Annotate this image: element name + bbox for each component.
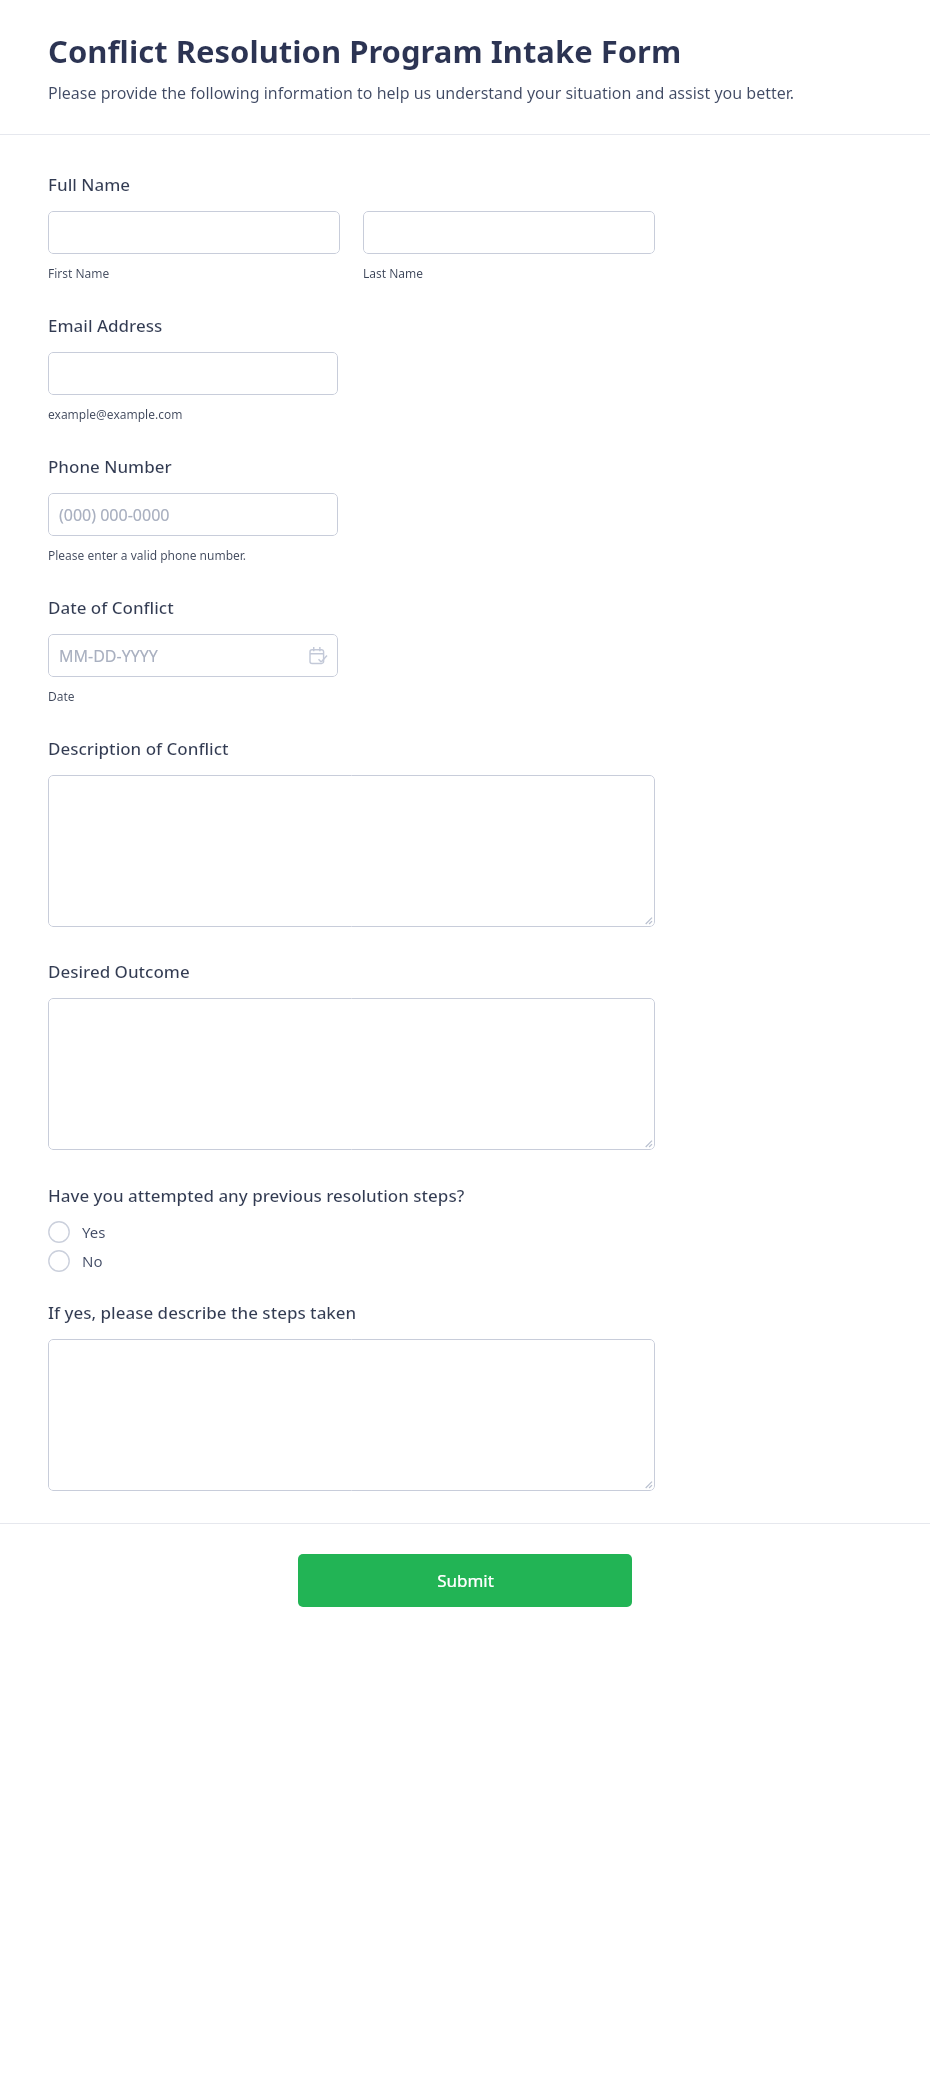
staticText: No [82, 1251, 103, 1271]
staticText: Have you attempted any previous resoluti… [48, 1184, 465, 1207]
button[interactable] [363, 211, 655, 254]
staticText: Desired Outcome [48, 960, 190, 983]
staticText: Email Address [48, 314, 163, 337]
staticText: If yes, please describe the steps taken [48, 1301, 357, 1324]
staticText: Full Name [48, 173, 131, 196]
button[interactable]: No [48, 1246, 655, 1275]
button[interactable] [48, 211, 340, 254]
staticText: example@example.com [48, 406, 183, 422]
staticText: Date [48, 688, 75, 704]
staticText: Date of Conflict [48, 596, 174, 619]
staticText: Yes [82, 1222, 106, 1242]
button[interactable] [48, 352, 338, 395]
other: Choose date [310, 647, 327, 664]
button[interactable] [48, 998, 655, 1150]
button[interactable] [48, 775, 655, 927]
staticText: First Name [48, 265, 110, 281]
staticText: Last Name [363, 265, 424, 281]
button[interactable]: MM-DD-YYYY [48, 634, 338, 677]
staticText: Description of Conflict [48, 737, 229, 760]
button[interactable]: Submit [298, 1554, 632, 1607]
staticText: Please provide the following information… [48, 82, 795, 104]
staticText: (000) 000-0000 [59, 504, 170, 526]
staticText: Conflict Resolution Program Intake Form [48, 30, 682, 72]
staticText: MM-DD-YYYY [59, 645, 158, 667]
button[interactable] [48, 1339, 655, 1491]
staticText: Phone Number [48, 455, 172, 478]
staticText: Submit [437, 1569, 494, 1592]
button[interactable]: Yes [48, 1217, 655, 1246]
staticText: Please enter a valid phone number. [48, 547, 247, 563]
button[interactable]: (000) 000-0000 [48, 493, 338, 536]
